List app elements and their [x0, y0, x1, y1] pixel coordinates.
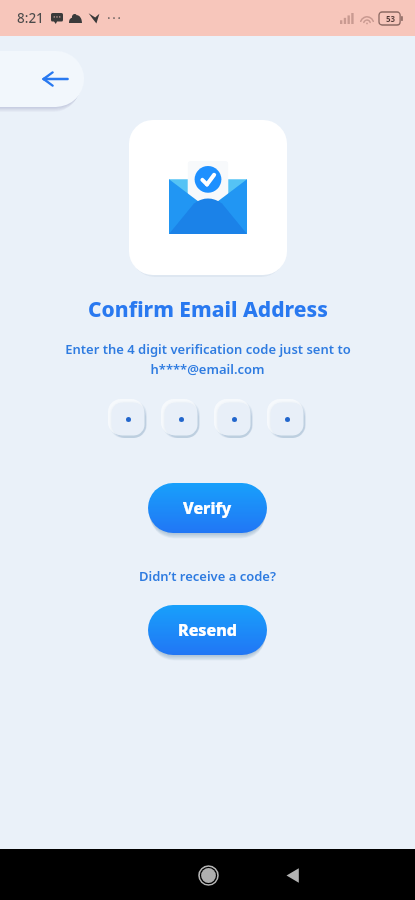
staticText: 8:21 — [17, 9, 44, 27]
staticText: Resend — [178, 619, 237, 641]
staticText: Enter the 4 digit verification code just… — [65, 340, 351, 358]
button[interactable]: Resend — [148, 605, 267, 655]
staticText: Didn’t receive a code? — [139, 567, 276, 585]
button[interactable]: Back — [270, 853, 314, 897]
button[interactable]: Digit 1 — [109, 400, 147, 438]
button[interactable]: Digit 2 — [162, 400, 200, 438]
button[interactable]: Back — [40, 64, 70, 94]
button[interactable]: Digit 4 — [268, 400, 306, 438]
staticText: Verify — [183, 497, 232, 519]
staticText: h****@email.com — [150, 360, 265, 378]
button[interactable]: Didn’t receive a code? — [133, 565, 282, 587]
button[interactable]: Verify — [148, 483, 267, 533]
button[interactable]: Digit 3 — [215, 400, 253, 438]
staticText: 53 — [386, 13, 396, 24]
staticText: Confirm Email Address — [88, 295, 328, 324]
button[interactable]: Home — [186, 853, 230, 897]
